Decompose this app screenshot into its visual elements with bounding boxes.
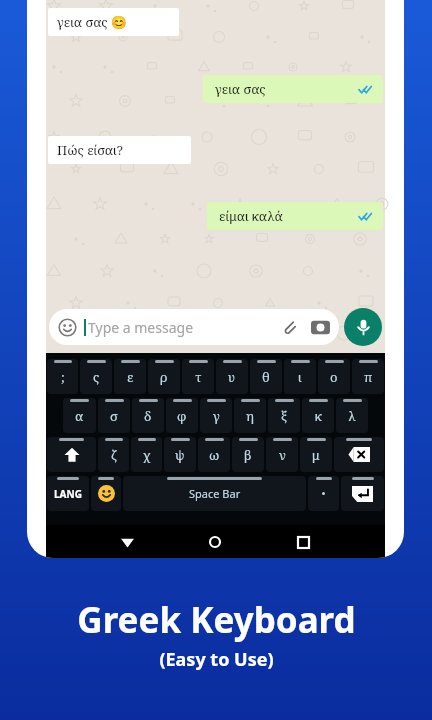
staticText: κ [315, 407, 322, 425]
staticText: β [244, 446, 252, 464]
staticText: χ [143, 446, 151, 464]
staticText: LANG [54, 487, 82, 501]
button[interactable]: Backspace [334, 437, 384, 472]
staticText: ω [209, 446, 220, 464]
staticText: τ [195, 368, 202, 386]
button[interactable]: ρ [148, 359, 180, 394]
staticText: δ [144, 407, 152, 425]
button[interactable]: είμαι καλά [207, 202, 383, 230]
staticText: υ [228, 368, 236, 386]
button[interactable]: ς [80, 359, 112, 394]
button[interactable]: Back [112, 527, 142, 557]
button[interactable]: γεια σας 😊 [48, 8, 179, 36]
button[interactable]: α [63, 398, 96, 433]
button[interactable] [308, 476, 339, 511]
button[interactable]: Enter [341, 476, 384, 511]
button[interactable]: Recents [288, 527, 318, 557]
staticText: ρ [160, 368, 168, 386]
button[interactable]: γ [200, 398, 232, 433]
staticText: Space Bar [189, 486, 241, 501]
staticText: λ [348, 407, 356, 425]
staticText: π [364, 368, 373, 386]
button[interactable]: λ [336, 398, 368, 433]
staticText: α [75, 407, 84, 425]
staticText: ν [279, 446, 286, 464]
other: Enter [352, 486, 373, 502]
button[interactable]: τ [182, 359, 214, 394]
staticText: γ [213, 407, 220, 425]
button[interactable]: Emoji [49, 309, 339, 345]
staticText: ζ [111, 446, 117, 464]
button[interactable]: Emoji [91, 476, 121, 511]
staticText: γεια σας [215, 80, 266, 98]
button[interactable]: Voice message [344, 308, 382, 346]
staticText: ξ [281, 407, 287, 425]
button[interactable]: ξ [268, 398, 300, 433]
button[interactable]: π [352, 359, 384, 394]
button[interactable]: LANG [47, 476, 89, 511]
staticText: ς [93, 368, 100, 386]
button[interactable]: Home [200, 527, 230, 557]
staticText: φ [177, 407, 187, 425]
button[interactable]: β [232, 437, 264, 472]
staticText: ι [298, 368, 302, 386]
button[interactable]: η [234, 398, 266, 433]
other: Emoji [58, 318, 77, 337]
button[interactable]: γεια σας [203, 75, 383, 103]
button[interactable]: φ [166, 398, 198, 433]
button[interactable]: ι [284, 359, 316, 394]
other: Emoji [98, 485, 115, 502]
staticText: ψ [175, 446, 185, 464]
other: Shift [63, 446, 81, 464]
button[interactable]: Space Bar [123, 476, 306, 511]
staticText: γεια σας 😊 [57, 13, 128, 31]
staticText: (Easy to Use) [159, 647, 274, 672]
staticText: ; [61, 368, 65, 386]
button[interactable]: δ [132, 398, 164, 433]
other: Attach [280, 318, 299, 337]
button[interactable]: χ [131, 437, 162, 472]
staticText: η [246, 407, 254, 425]
staticText: ε [127, 368, 134, 386]
button[interactable]: ο [318, 359, 350, 394]
staticText: θ [262, 368, 270, 386]
staticText: Type a message [88, 318, 194, 337]
other: Backspace [348, 447, 370, 462]
button[interactable]: ζ [98, 437, 129, 472]
staticText: μ [312, 446, 320, 464]
button[interactable]: σ [98, 398, 130, 433]
button[interactable]: Πώς είσαι? [48, 136, 191, 164]
staticText: Πώς είσαι? [57, 141, 123, 159]
staticText: ο [330, 368, 338, 386]
button[interactable]: Shift [47, 437, 96, 472]
button[interactable]: ψ [164, 437, 196, 472]
button[interactable]: μ [300, 437, 332, 472]
button[interactable]: ε [114, 359, 146, 394]
other: Camera [311, 318, 330, 337]
button[interactable]: ω [198, 437, 230, 472]
staticText: είμαι καλά [219, 207, 283, 225]
button[interactable]: ; [47, 359, 78, 394]
staticText: Greek Keyboard [77, 596, 356, 644]
button[interactable]: κ [302, 398, 334, 433]
button[interactable]: υ [216, 359, 248, 394]
staticText: σ [110, 407, 118, 425]
button[interactable]: ν [266, 437, 298, 472]
button[interactable]: θ [250, 359, 282, 394]
